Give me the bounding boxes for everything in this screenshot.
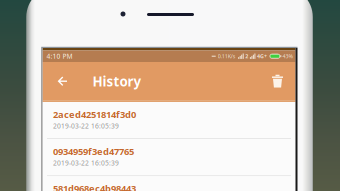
staticText: 0.11K/s	[218, 53, 236, 60]
staticText: 581d968ec4b98443	[53, 182, 136, 191]
staticText: 43%	[282, 53, 292, 60]
button[interactable]: 581d968ec4b98443	[42, 176, 295, 191]
staticText: History	[92, 72, 141, 90]
staticText: 0934959f3ed47765	[53, 145, 134, 158]
button[interactable]: Back	[48, 65, 76, 97]
button[interactable]: 2aced4251814f3d0	[42, 102, 295, 138]
button[interactable]: 0934959f3ed47765	[42, 139, 295, 175]
staticText: 2019-03-22 16:05:39	[53, 121, 119, 130]
staticText: 2	[245, 53, 248, 60]
staticText: 2aced4251814f3d0	[53, 108, 136, 120]
staticText: 4:10 PM	[46, 52, 72, 61]
button[interactable]: Clear history	[264, 65, 290, 97]
staticText: 2019-03-22 16:05:39	[53, 159, 119, 167]
staticText: 4G+	[257, 53, 267, 60]
